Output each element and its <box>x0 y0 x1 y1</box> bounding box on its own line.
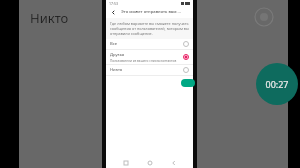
staticText: 00:27 <box>265 78 289 90</box>
button[interactable]: Home <box>145 158 154 167</box>
staticText: Никто <box>30 9 69 27</box>
button[interactable]: Друзья <box>106 50 193 64</box>
button[interactable]: Back <box>109 8 118 17</box>
staticText: Пользователи из вашего списка контактов <box>110 59 177 63</box>
button[interactable]: Все <box>106 39 193 49</box>
staticText: Где любом варианте вы сможете получать с… <box>110 21 189 36</box>
button[interactable]: Back <box>169 158 178 167</box>
button[interactable]: Recents <box>121 158 130 167</box>
staticText: Никто <box>110 67 123 73</box>
button[interactable]: Send <box>181 79 195 87</box>
staticText: 17:53 <box>109 1 118 6</box>
staticText: Все <box>110 41 118 47</box>
button[interactable]: Никто <box>106 65 193 75</box>
button[interactable]: Recording timer <box>256 63 298 105</box>
staticText: Это может отправлять вам … <box>121 9 182 15</box>
staticText: Друзья <box>110 52 125 58</box>
